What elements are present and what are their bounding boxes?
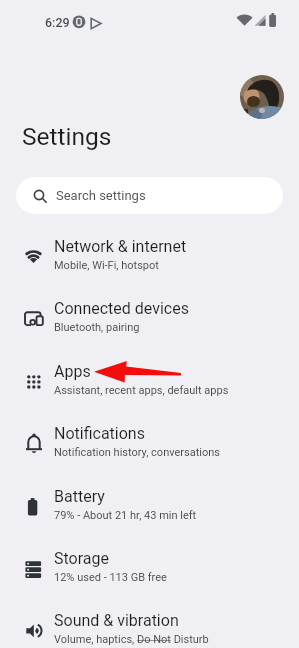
staticText: Notification history, conversations [54,446,220,459]
button[interactable]: Sound & vibration [0,597,299,648]
staticText: Mobile, Wi-Fi, hotspot [54,259,159,272]
staticText: 79% - About 21 hr, 43 min left [54,509,197,522]
button[interactable]: Search settings [16,177,283,214]
staticText: Sound & vibration [54,611,179,630]
staticText: Assistant, recent apps, default apps [54,384,229,397]
staticText: Settings [22,122,112,151]
staticText: Battery [54,487,105,506]
staticText: Connected devices [54,299,189,318]
staticText: Notifications [54,424,145,443]
staticText: Volume, haptics, Do Not Disturb [54,633,209,646]
button[interactable]: Connected devices [0,285,299,347]
button[interactable]: Battery [0,473,299,535]
button[interactable]: Notifications [0,410,299,472]
button[interactable]: Storage [0,535,299,597]
staticText: 12% used - 113 GB free [54,571,167,584]
button[interactable]: Network & internet [0,223,299,285]
button[interactable]: Apps [0,348,299,410]
staticText: Apps [54,362,91,381]
staticText: Search settings [56,188,146,203]
staticText: Storage [54,549,109,568]
button[interactable] [240,75,284,119]
staticText: 6:29 [45,15,70,30]
staticText: Bluetooth, pairing [54,321,140,334]
staticText: Network & internet [54,237,187,256]
